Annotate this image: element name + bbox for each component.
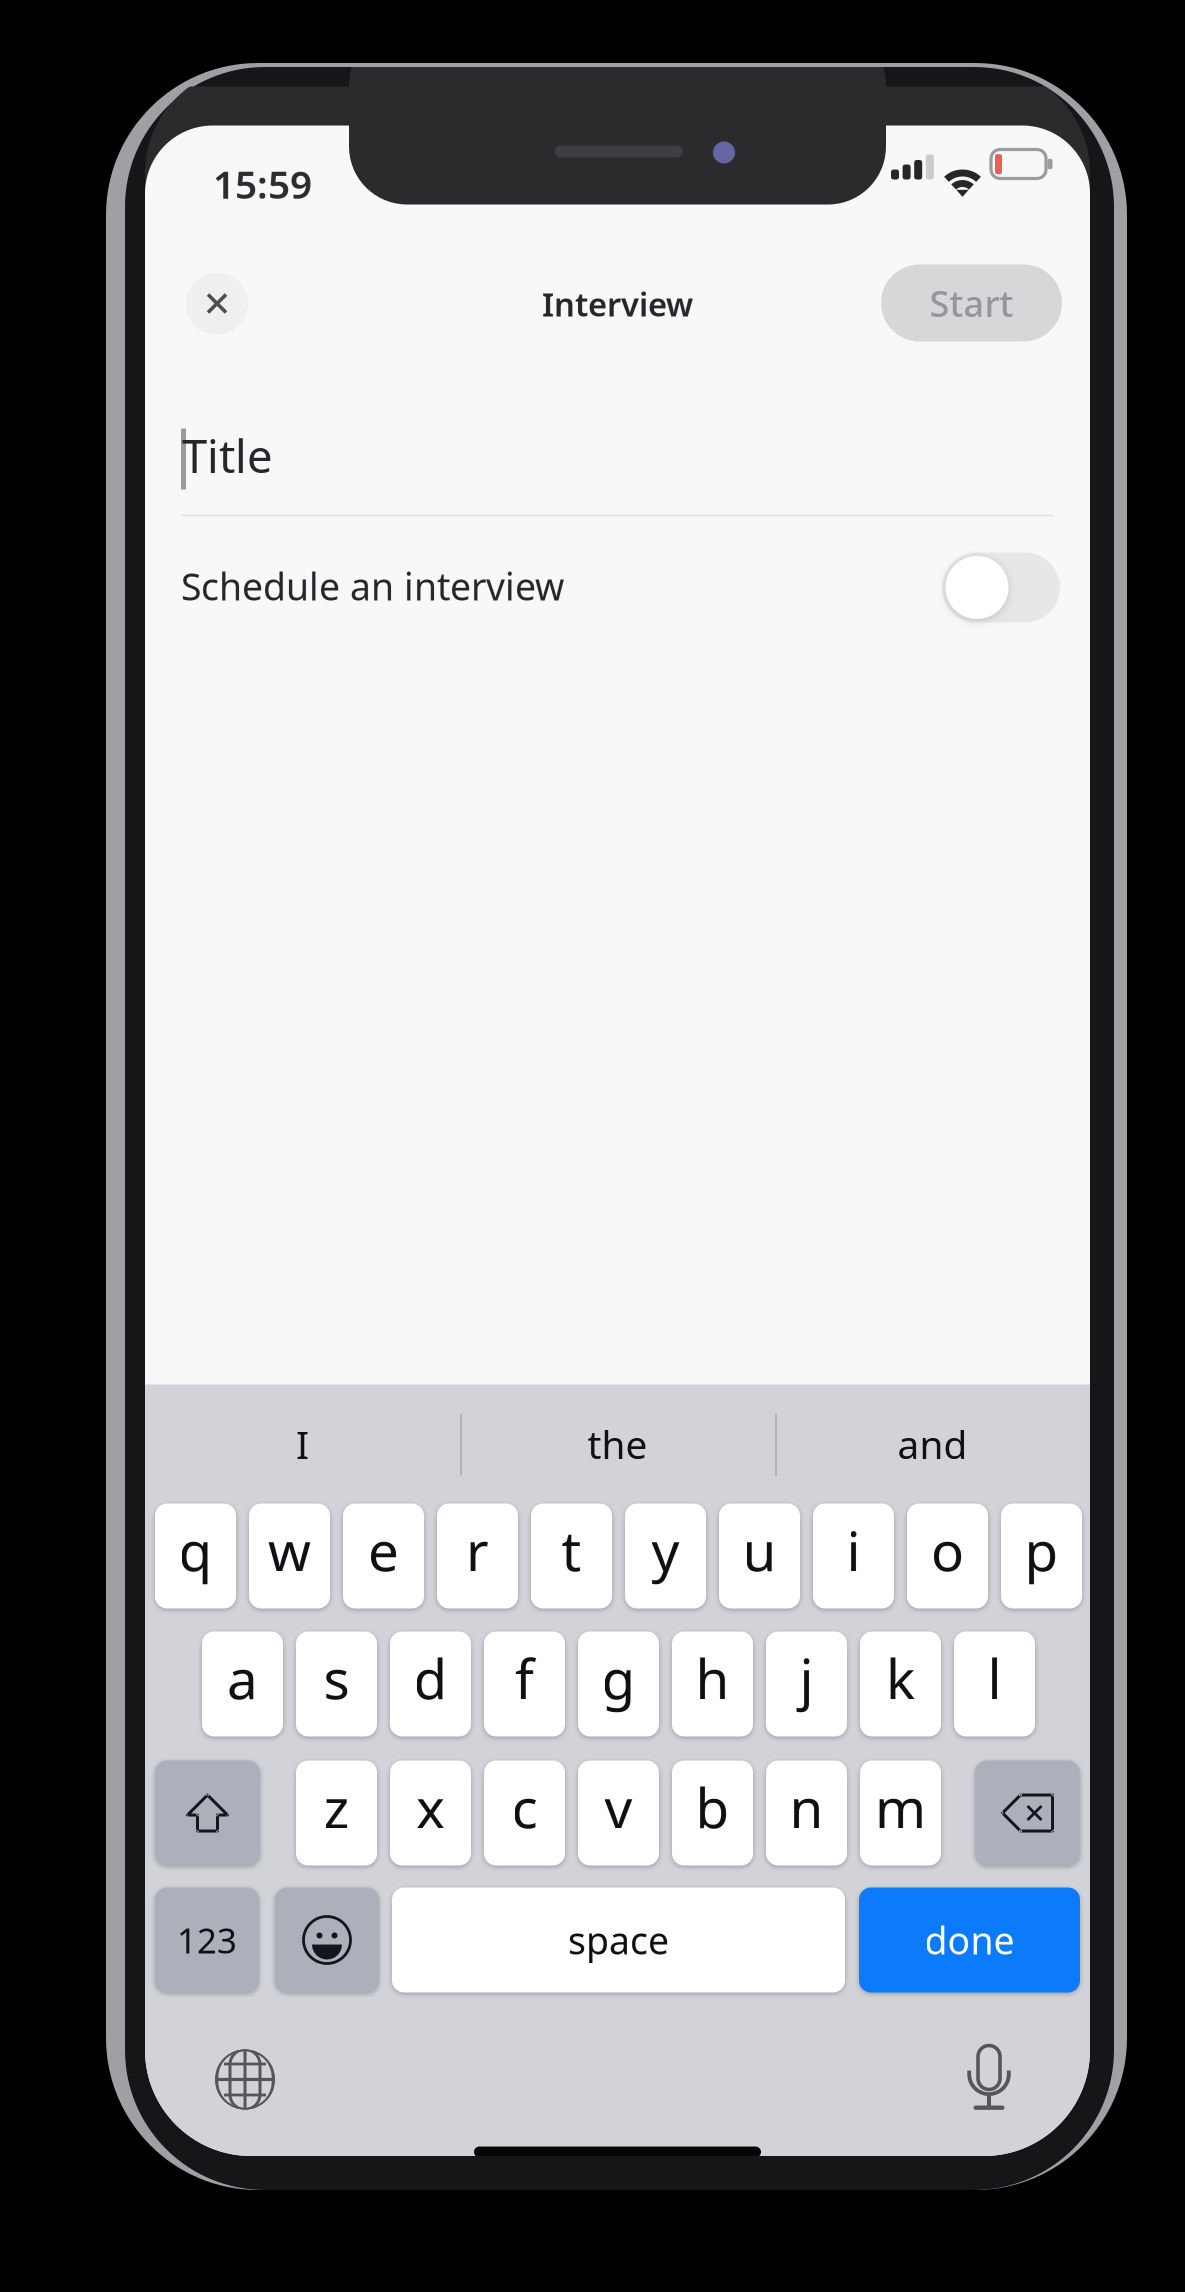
staticText: t: [561, 1513, 581, 1587]
button[interactable]: Dictate: [967, 2045, 1011, 2110]
button[interactable]: a: [202, 1631, 283, 1736]
staticText: o: [931, 1513, 964, 1587]
staticText: z: [323, 1770, 349, 1844]
button[interactable]: p: [1001, 1503, 1082, 1608]
staticText: g: [601, 1641, 635, 1715]
staticText: Start: [929, 278, 1013, 327]
button[interactable]: Numbers: [155, 1887, 259, 1992]
staticText: and: [897, 1418, 967, 1470]
staticText: space: [568, 1915, 669, 1965]
button[interactable]: Start: [881, 264, 1062, 341]
staticText: Schedule an interview: [181, 560, 564, 611]
staticText: l: [987, 1641, 1001, 1715]
staticText: q: [178, 1513, 212, 1587]
button[interactable]: Schedule an interview: [942, 552, 1060, 622]
button[interactable]: v: [578, 1760, 659, 1865]
button[interactable]: m: [860, 1760, 941, 1865]
staticText: done: [924, 1915, 1014, 1965]
staticText: 15:59: [213, 157, 312, 210]
button[interactable]: space: [392, 1887, 845, 1992]
button[interactable]: s: [296, 1631, 377, 1736]
staticText: w: [268, 1513, 311, 1587]
staticText: the: [587, 1418, 647, 1470]
button[interactable]: c: [484, 1760, 565, 1865]
staticText: I: [296, 1418, 309, 1470]
staticText: y: [651, 1513, 679, 1587]
button[interactable]: d: [390, 1631, 471, 1736]
button[interactable]: o: [907, 1503, 988, 1608]
button[interactable]: w: [249, 1503, 330, 1608]
button[interactable]: Close: [186, 272, 248, 334]
button[interactable]: j: [766, 1631, 847, 1736]
button[interactable]: Delete: [975, 1760, 1080, 1865]
button[interactable]: b: [672, 1760, 753, 1865]
staticText: i: [846, 1513, 860, 1587]
button[interactable]: Emoji: [275, 1887, 379, 1992]
staticText: r: [466, 1513, 489, 1587]
staticText: v: [604, 1770, 632, 1844]
staticText: b: [695, 1770, 729, 1844]
staticText: n: [789, 1770, 823, 1844]
staticText: f: [515, 1641, 534, 1715]
staticText: p: [1024, 1513, 1058, 1587]
button[interactable]: i: [813, 1503, 894, 1608]
staticText: s: [323, 1641, 349, 1715]
button[interactable]: g: [578, 1631, 659, 1736]
button[interactable]: Shift: [155, 1760, 260, 1865]
button[interactable]: x: [390, 1760, 471, 1865]
button[interactable]: l: [954, 1631, 1035, 1736]
staticText: j: [799, 1641, 813, 1715]
button[interactable]: done: [859, 1887, 1080, 1992]
button[interactable]: Switch keyboard: [215, 2049, 275, 2109]
button[interactable]: q: [155, 1503, 236, 1608]
button[interactable]: r: [437, 1503, 518, 1608]
staticText: d: [413, 1641, 447, 1715]
button[interactable]: u: [719, 1503, 800, 1608]
staticText: h: [695, 1641, 729, 1715]
button[interactable]: e: [343, 1503, 424, 1608]
staticText: c: [511, 1770, 537, 1844]
button[interactable]: f: [484, 1631, 565, 1736]
staticText: m: [875, 1770, 926, 1844]
staticText: Title: [182, 424, 273, 486]
staticText: 123: [177, 1916, 237, 1964]
button[interactable]: h: [672, 1631, 753, 1736]
staticText: x: [416, 1770, 445, 1844]
staticText: e: [368, 1513, 399, 1587]
staticText: a: [227, 1641, 258, 1715]
button[interactable]: z: [296, 1760, 377, 1865]
button[interactable]: y: [625, 1503, 706, 1608]
staticText: Interview: [542, 281, 693, 326]
staticText: u: [742, 1513, 776, 1587]
button[interactable]: n: [766, 1760, 847, 1865]
button[interactable]: k: [860, 1631, 941, 1736]
staticText: k: [886, 1641, 915, 1715]
button[interactable]: t: [531, 1503, 612, 1608]
